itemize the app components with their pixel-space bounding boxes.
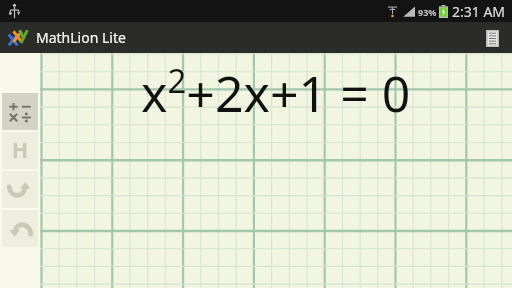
staticText: MathLion Lite (36, 28, 126, 47)
button[interactable]: Operators (2, 93, 38, 130)
staticText: 93% (418, 6, 437, 18)
staticText: H (12, 136, 29, 165)
button[interactable]: x2+2x+1 = 0 (40, 53, 512, 131)
button[interactable]: History list (479, 25, 505, 51)
button[interactable]: Hint (2, 132, 38, 169)
staticText: 2:31 AM (452, 2, 506, 21)
button[interactable]: Undo (2, 210, 38, 247)
staticText: x2+2x+1 = 0 (141, 58, 411, 126)
button[interactable]: Redo (2, 171, 38, 208)
